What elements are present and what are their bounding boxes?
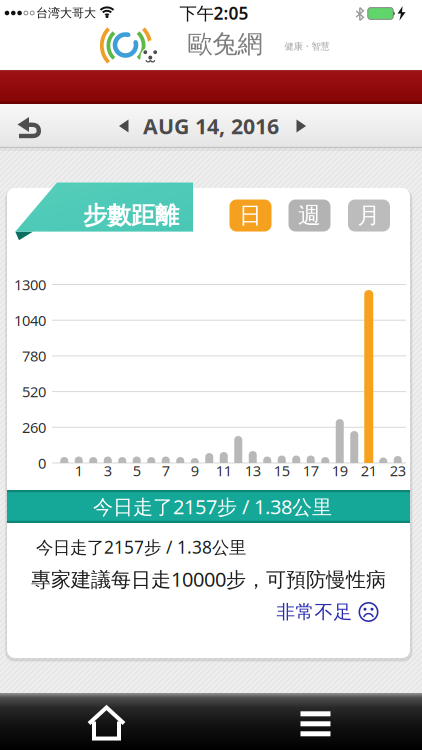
staticText: 17 <box>303 461 319 480</box>
staticText: 歐兔網 <box>187 28 262 59</box>
button[interactable]: 日 <box>229 199 271 231</box>
button[interactable] <box>293 702 337 746</box>
staticText: 1040 <box>14 310 46 330</box>
staticText: 260 <box>22 418 46 437</box>
staticText: 5 <box>133 461 141 480</box>
button[interactable]: 月 <box>348 199 390 231</box>
staticText: 專家建議每日走10000步，可預防慢性病 <box>31 566 386 592</box>
staticText: 520 <box>22 382 46 401</box>
staticText: 13 <box>245 461 261 480</box>
staticText: 0 <box>38 453 46 473</box>
staticText: 下午2:05 <box>179 1 248 24</box>
staticText: 台湾大哥大 <box>36 6 96 20</box>
staticText: 今日走了2157步 / 1.38公里 <box>93 493 332 520</box>
staticText: 步數距離 <box>83 201 179 230</box>
staticText: 23 <box>390 461 406 480</box>
staticText: 7 <box>162 461 170 480</box>
staticText: 21 <box>361 461 377 480</box>
staticText: 19 <box>332 461 348 480</box>
staticText: 非常不足 <box>276 600 352 623</box>
button[interactable] <box>286 111 316 141</box>
staticText: 3 <box>104 461 112 480</box>
staticText: 9 <box>191 461 199 480</box>
staticText: 780 <box>22 346 46 366</box>
button[interactable]: 週 <box>288 199 330 231</box>
staticText: 1300 <box>14 275 46 294</box>
staticText: AUG 14, 2016 <box>143 112 279 140</box>
staticText: 11 <box>216 461 232 480</box>
button[interactable] <box>9 108 49 146</box>
staticText: 日 <box>239 202 262 229</box>
button[interactable] <box>84 702 128 746</box>
staticText: 15 <box>274 461 290 480</box>
staticText: 1 <box>75 461 83 480</box>
staticText: 今日走了2157步 / 1.38公里 <box>36 535 246 558</box>
staticText: 月 <box>357 202 380 229</box>
staticText: 週 <box>298 202 321 229</box>
staticText: 健康・智慧 <box>284 41 329 52</box>
button[interactable] <box>109 111 139 141</box>
